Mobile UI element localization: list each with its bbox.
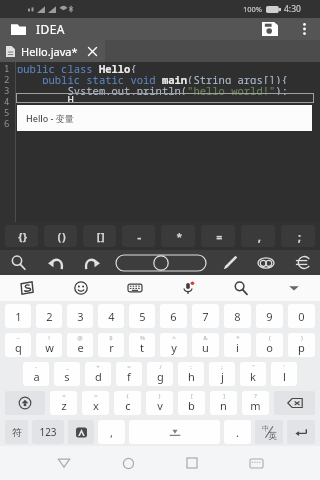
button[interactable]: 7 xyxy=(192,304,219,328)
button[interactable]: 4 xyxy=(98,304,124,328)
button[interactable]: Undo xyxy=(37,250,74,275)
staticText: x xyxy=(93,398,99,413)
staticText: Hello - 变量 xyxy=(26,112,74,124)
button[interactable]: Enter xyxy=(287,420,315,444)
button[interactable]: ~ xyxy=(5,333,31,357)
button[interactable]: 1 xyxy=(5,304,31,328)
button[interactable]: * xyxy=(224,333,251,357)
staticText: / xyxy=(159,363,162,371)
staticText: n xyxy=(220,398,227,413)
staticText: r xyxy=(109,340,114,355)
button[interactable]: 3 xyxy=(67,304,93,328)
button[interactable]: () xyxy=(44,225,77,247)
staticText: System.out.println("hello world!"); xyxy=(17,84,288,95)
button[interactable]: @ xyxy=(67,333,93,357)
button[interactable]: 0 xyxy=(288,304,315,328)
button[interactable]: $ xyxy=(98,333,124,357)
staticText: < xyxy=(62,392,66,400)
button[interactable]: : xyxy=(178,362,204,386)
button[interactable]: Backspace xyxy=(274,391,315,415)
staticText: & xyxy=(203,334,208,342)
staticText: ^ xyxy=(172,334,176,342)
button[interactable]: [] xyxy=(83,225,116,247)
staticText: > xyxy=(94,392,98,400)
button[interactable]: , xyxy=(241,225,275,247)
button[interactable]: , xyxy=(98,420,125,444)
button[interactable]: ^ xyxy=(160,333,187,357)
button[interactable]: Hide toolbar xyxy=(267,275,320,301)
button[interactable]: ; xyxy=(281,225,315,247)
button[interactable]: " xyxy=(240,362,266,386)
staticText: 7 xyxy=(202,309,209,324)
staticText: ; xyxy=(221,363,223,371)
button[interactable]: { xyxy=(114,391,141,415)
button[interactable]: 123 xyxy=(32,420,64,444)
button[interactable]: Open project xyxy=(8,18,28,40)
button[interactable]: Redo xyxy=(74,250,110,275)
button[interactable]: = xyxy=(201,225,235,247)
button[interactable]: / xyxy=(147,362,173,386)
button[interactable]: 5 xyxy=(129,304,155,328)
staticText: 4 xyxy=(108,309,115,324)
button[interactable]: Shift xyxy=(5,391,45,415)
button[interactable]: Cursor control xyxy=(110,250,212,275)
button[interactable]: {} xyxy=(5,225,38,247)
button[interactable]: _ xyxy=(54,362,80,386)
button[interactable]: 9 xyxy=(256,304,283,328)
button[interactable]: Search xyxy=(214,275,267,301)
button[interactable]: ( xyxy=(256,333,283,357)
button[interactable]: ; xyxy=(209,362,235,386)
button[interactable]: Emoji xyxy=(54,275,108,301)
staticText: " xyxy=(252,363,255,371)
button[interactable]: = xyxy=(116,362,142,386)
button[interactable]: < xyxy=(50,391,77,415)
button[interactable]: More options xyxy=(296,18,312,40)
button[interactable]: Voice input xyxy=(161,275,214,301)
button[interactable]: 6 xyxy=(160,304,187,328)
button[interactable]: & xyxy=(192,333,219,357)
button[interactable]: ' xyxy=(271,362,297,386)
staticText: 6 xyxy=(170,309,177,324)
button[interactable]: * xyxy=(161,225,195,247)
button[interactable]: Hello - 变量 xyxy=(17,105,312,131)
staticText: j xyxy=(221,369,224,384)
staticText: 100% xyxy=(243,4,263,14)
staticText: IDEA xyxy=(36,21,65,37)
button[interactable]: ? xyxy=(242,391,269,415)
button[interactable]: Back xyxy=(32,446,96,480)
button[interactable]: > xyxy=(82,391,109,415)
staticText: 6 xyxy=(4,117,10,128)
button[interactable]: Hide keyboard xyxy=(224,446,288,480)
button[interactable]: - xyxy=(122,225,155,247)
button[interactable]: Keyboard layout xyxy=(108,275,161,301)
button[interactable]: [ xyxy=(178,391,205,415)
button[interactable]: Home xyxy=(96,446,160,480)
staticText: ! xyxy=(48,334,50,342)
button[interactable]: 符 xyxy=(5,420,28,444)
staticText: o xyxy=(266,340,273,355)
button[interactable]: Search xyxy=(0,250,37,275)
button[interactable]: Hello.java* xyxy=(0,40,105,62)
button[interactable]: } xyxy=(146,391,173,415)
button[interactable]: Space xyxy=(129,420,220,444)
staticText: 3 xyxy=(77,309,84,324)
button[interactable]: Comment xyxy=(248,250,284,275)
button[interactable]: ) xyxy=(288,333,315,357)
button[interactable]: + xyxy=(85,362,111,386)
button[interactable]: Symbols xyxy=(284,250,320,275)
button[interactable]: Input mode xyxy=(68,420,94,444)
button[interactable]: Close tab xyxy=(85,44,99,58)
button[interactable]: 8 xyxy=(224,304,251,328)
button[interactable]: 2 xyxy=(36,304,62,328)
button[interactable]: % xyxy=(129,333,155,357)
button[interactable]: Save xyxy=(258,18,282,40)
staticText: 4:30 xyxy=(284,3,301,15)
button[interactable]: Sogou input xyxy=(0,275,54,301)
button[interactable]: Recents xyxy=(160,446,224,480)
button[interactable]: ! xyxy=(36,333,62,357)
button[interactable]: Chinese English toggle xyxy=(255,420,283,444)
button[interactable]: ] xyxy=(210,391,237,415)
button[interactable]: Edit xyxy=(212,250,248,275)
button[interactable]: . xyxy=(224,420,251,444)
button[interactable]: - xyxy=(23,362,49,386)
